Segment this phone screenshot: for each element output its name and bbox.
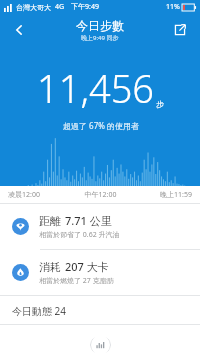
staticText: 11% — [166, 2, 180, 12]
staticText: 超過了 67% 的使用者 — [63, 120, 139, 131]
staticText: 下午9:49 — [71, 2, 99, 12]
staticText: 今日步數 — [76, 18, 124, 33]
button[interactable]: Share — [166, 16, 194, 44]
staticText: 晚上9:49 同步 — [81, 34, 119, 42]
staticText: 相當於燃燒了 27 克脂肪 — [39, 276, 114, 286]
staticText: 台灣大哥大 — [16, 3, 51, 12]
staticText: 凌晨12:00 — [8, 190, 70, 200]
button[interactable]: 消耗 — [0, 250, 200, 295]
staticText: 距離 — [39, 214, 61, 228]
staticText: 相當於節省了 0.62 升汽油 — [39, 230, 120, 240]
staticText: 207 大卡 — [65, 259, 109, 274]
staticText: 中午12:00 — [70, 190, 131, 200]
staticText: 7.71 公里 — [65, 213, 112, 228]
staticText: 4G — [55, 2, 65, 12]
staticText: 步 — [156, 99, 164, 109]
staticText: 11,456 — [37, 62, 155, 114]
staticText: 消耗 — [39, 260, 61, 274]
button[interactable]: 統計 — [82, 335, 119, 355]
button[interactable]: Back — [4, 15, 34, 45]
staticText: 晚上11:59 — [131, 190, 192, 200]
button[interactable]: 距離 — [0, 204, 200, 249]
staticText: 今日動態 24 — [12, 304, 67, 318]
